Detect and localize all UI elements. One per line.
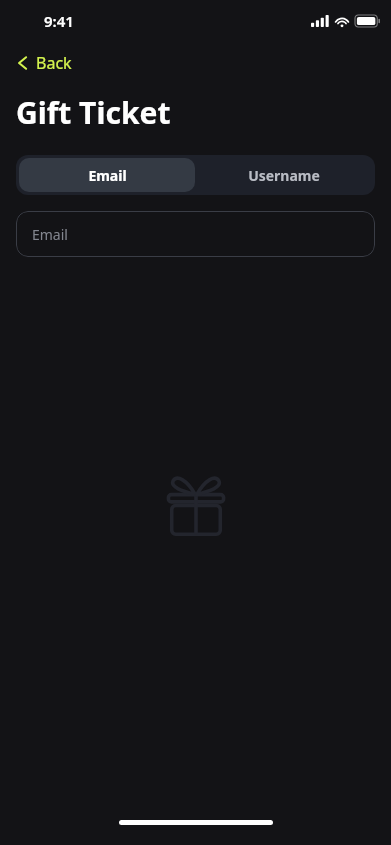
other: Gift <box>163 474 229 540</box>
button[interactable]: Email <box>16 211 375 257</box>
staticText: Back <box>36 52 72 74</box>
staticText: Email <box>32 225 68 244</box>
staticText: 9:41 <box>44 11 74 31</box>
button[interactable]: Email <box>19 158 195 192</box>
staticText: Email <box>88 166 127 185</box>
staticText: Username <box>248 166 320 185</box>
button[interactable]: Back <box>14 48 74 78</box>
button[interactable]: Username <box>195 158 372 192</box>
staticText: Gift Ticket <box>16 92 171 133</box>
